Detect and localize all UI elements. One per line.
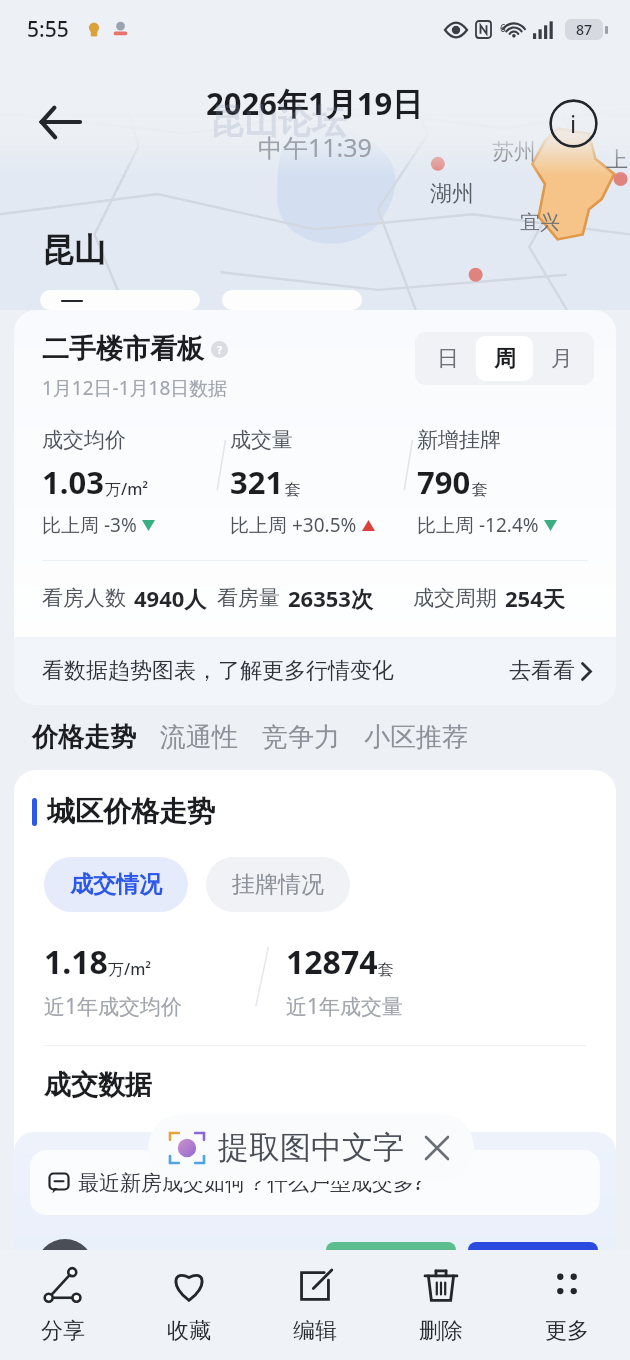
staticText: 中午11:39 bbox=[258, 130, 372, 164]
staticText: 1.03 bbox=[42, 461, 104, 503]
staticText: 比上周 +30.5% bbox=[230, 512, 357, 538]
button[interactable]: 流通性 bbox=[160, 721, 262, 760]
staticText: 最近新房成交如何？什么户型成交多? bbox=[78, 1168, 424, 1197]
staticText: i bbox=[570, 107, 577, 140]
button[interactable]: Close bbox=[420, 1131, 454, 1165]
button[interactable]: Back bbox=[24, 86, 96, 158]
staticText: 价格走势 bbox=[32, 721, 136, 754]
staticText: 套 bbox=[378, 960, 394, 980]
staticText: 收藏 bbox=[167, 1317, 211, 1345]
button[interactable]: 价格走势 bbox=[32, 721, 160, 760]
staticText: 套 bbox=[285, 480, 301, 500]
button[interactable]: 编辑 bbox=[252, 1250, 378, 1360]
staticText: 日 bbox=[437, 345, 459, 373]
button[interactable]: 日 bbox=[419, 336, 476, 381]
button[interactable]: 月 bbox=[533, 336, 590, 381]
staticText: 看房量 bbox=[217, 585, 280, 611]
button[interactable]: 提取图中文字 bbox=[148, 1114, 474, 1181]
staticText: 1.18 bbox=[44, 940, 108, 984]
staticText: 790 bbox=[417, 461, 471, 503]
staticText: 成交周期 bbox=[413, 585, 497, 611]
staticText: 昆山论坛 bbox=[336, 1256, 584, 1334]
staticText: 月 bbox=[551, 345, 573, 373]
staticText: 成交数据 bbox=[44, 1068, 152, 1102]
staticText: 昆山论坛 bbox=[210, 100, 346, 143]
staticText: 近1年成交量 bbox=[286, 992, 404, 1021]
staticText: 看房人数 bbox=[42, 585, 126, 611]
staticText: 小区推荐 bbox=[364, 721, 468, 754]
button[interactable]: 收藏 bbox=[126, 1250, 252, 1360]
staticText: 12874 bbox=[286, 940, 378, 984]
staticText: 更多 bbox=[545, 1317, 589, 1345]
button[interactable] bbox=[326, 1242, 456, 1294]
staticText: 比上周 -3% bbox=[42, 512, 137, 538]
staticText: 2026年1月19日 bbox=[206, 82, 424, 124]
staticText: 看数据趋势图表，了解更多行情变化 bbox=[42, 657, 509, 685]
staticText: 城区价格走势 bbox=[47, 794, 215, 829]
staticText: 4940人 bbox=[134, 583, 207, 613]
staticText: 87 bbox=[576, 20, 593, 39]
staticText: 编辑 bbox=[293, 1317, 337, 1345]
staticText: 成交情况 bbox=[70, 870, 162, 899]
staticText: 周 bbox=[494, 345, 516, 373]
button[interactable]: 分享 bbox=[0, 1250, 126, 1360]
staticText: 比上周 -12.4% bbox=[417, 512, 539, 538]
staticText: 湖州 bbox=[430, 180, 474, 208]
staticText: 321 bbox=[230, 461, 284, 503]
button[interactable]: 删除 bbox=[378, 1250, 504, 1360]
staticText: ? bbox=[217, 342, 223, 357]
button[interactable]: Info bbox=[538, 88, 608, 158]
button[interactable]: 成交情况 bbox=[44, 857, 188, 912]
button[interactable]: 更换城区 bbox=[40, 290, 200, 310]
staticText: 254天 bbox=[505, 583, 565, 613]
staticText: 挂牌情况 bbox=[232, 870, 324, 899]
staticText: 1月12日-1月18日数据 bbox=[42, 375, 228, 401]
button[interactable] bbox=[468, 1242, 598, 1294]
staticText: 新增挂牌 bbox=[417, 427, 501, 453]
staticText: 昆山 bbox=[42, 230, 106, 270]
staticText: 宜兴 bbox=[520, 210, 560, 235]
button[interactable]: 周 bbox=[476, 336, 533, 381]
staticText: 套 bbox=[472, 480, 488, 500]
staticText: 26353次 bbox=[288, 583, 373, 613]
button[interactable]: 最近新房成交如何？什么户型成交多? bbox=[30, 1150, 600, 1215]
staticText: 檀丽霞 bbox=[108, 1252, 326, 1285]
staticText: 去看看 bbox=[509, 657, 575, 685]
staticText: 分享 bbox=[41, 1317, 85, 1345]
staticText: 竞争力 bbox=[262, 721, 340, 754]
button[interactable]: 去订阅 bbox=[222, 290, 362, 310]
staticText: 万/m² bbox=[108, 958, 152, 980]
staticText: 近1年成交均价 bbox=[44, 992, 183, 1021]
staticText: 5:55 bbox=[27, 15, 69, 44]
staticText: 万/m² bbox=[105, 478, 149, 500]
staticText: 苏州 bbox=[492, 138, 536, 166]
staticText: 流通性 bbox=[160, 721, 238, 754]
staticText: 二手楼市看板 bbox=[42, 332, 204, 366]
staticText: 成交量 bbox=[230, 427, 293, 453]
staticText: 成交均价 bbox=[42, 427, 126, 453]
button[interactable]: 竞争力 bbox=[262, 721, 364, 760]
button[interactable]: 小区推荐 bbox=[364, 721, 492, 760]
staticText: 删除 bbox=[419, 1317, 463, 1345]
button[interactable]: 更多 bbox=[504, 1250, 630, 1360]
staticText: 6 bbox=[500, 21, 506, 35]
button[interactable]: 看数据趋势图表，了解更多行情变化 bbox=[14, 637, 616, 705]
staticText: 提取图中文字 bbox=[218, 1128, 404, 1167]
staticText: 上 bbox=[606, 146, 628, 174]
button[interactable]: 挂牌情况 bbox=[206, 857, 350, 912]
